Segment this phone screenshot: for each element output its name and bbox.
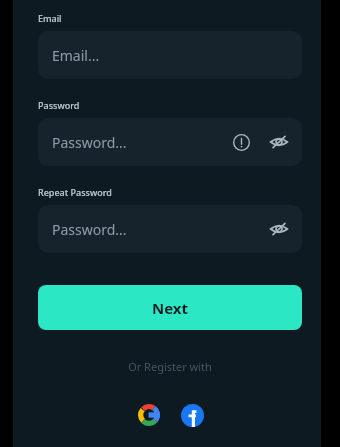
button[interactable]: Password... — [38, 118, 302, 166]
staticText: Email — [38, 12, 62, 24]
button[interactable]: Register with Google — [134, 400, 164, 430]
staticText: Next — [152, 298, 189, 318]
button[interactable]: Toggle password visibility — [266, 216, 292, 242]
staticText: Repeat Password — [38, 186, 112, 198]
button[interactable]: Toggle password visibility — [266, 129, 292, 155]
staticText: Email... — [52, 46, 294, 65]
staticText: Password... — [52, 220, 266, 239]
staticText: Password... — [52, 133, 228, 152]
button[interactable]: Password requirements info — [228, 129, 254, 155]
staticText: Password — [38, 99, 80, 111]
button[interactable]: Password... — [38, 205, 302, 253]
staticText: Or Register with — [38, 359, 302, 374]
button[interactable]: Register with Facebook — [177, 400, 207, 430]
button[interactable]: Next — [38, 285, 302, 330]
button[interactable]: Email... — [38, 31, 302, 79]
